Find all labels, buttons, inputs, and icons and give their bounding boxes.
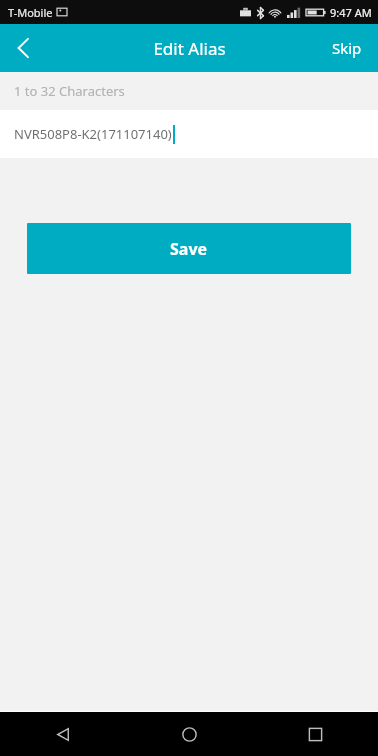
button[interactable]: Back: [0, 24, 48, 72]
button[interactable]: Recent apps: [252, 712, 378, 756]
staticText: T-Mobile: [8, 5, 53, 20]
staticText: Skip: [332, 38, 362, 58]
staticText: NVR508P8-K2(171107140): [14, 125, 172, 143]
staticText: Save: [170, 238, 208, 260]
button[interactable]: NVR508P8-K2(171107140): [0, 110, 378, 158]
staticText: Edit Alias: [153, 37, 226, 60]
button[interactable]: Save: [27, 223, 351, 274]
staticText: 9:47 AM: [330, 5, 372, 20]
button[interactable]: Skip: [316, 26, 378, 70]
staticText: 1 to 32 Characters: [14, 82, 125, 100]
button[interactable]: Home: [126, 712, 252, 756]
button[interactable]: Back: [0, 712, 126, 756]
